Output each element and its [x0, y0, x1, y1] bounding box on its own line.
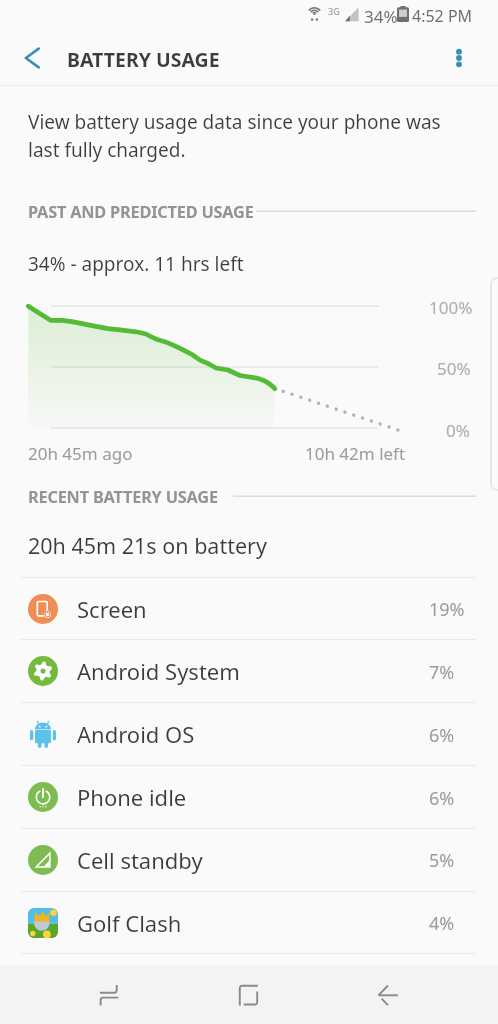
staticText: Phone idle [77, 782, 187, 812]
staticText: 4:52 PM [412, 5, 473, 27]
staticText: Golf Clash [77, 908, 182, 938]
staticText: 4% [429, 911, 455, 936]
staticText: 20h 45m 21s on battery [28, 531, 267, 560]
staticText: RECENT BATTERY USAGE [28, 486, 218, 508]
button[interactable]: Navigate up [6, 32, 58, 84]
staticText: 100% [429, 296, 473, 319]
staticText: Android OS [77, 719, 195, 749]
staticText: 3G [328, 5, 340, 17]
staticText: 5% [429, 848, 455, 873]
staticText: 0% [446, 419, 470, 442]
staticText: PAST AND PREDICTED USAGE [28, 201, 254, 223]
button[interactable]: Cell standby [0, 829, 498, 891]
button[interactable]: Phone idle [0, 766, 498, 828]
button[interactable]: Home [216, 963, 281, 1024]
staticText: 34% - approx. 11 hrs left [28, 251, 244, 277]
staticText: 6% [429, 723, 455, 748]
button[interactable]: Android System [0, 640, 498, 702]
staticText: 34% [364, 5, 398, 28]
staticText: 7% [429, 660, 455, 685]
staticText: 10h 42m left [305, 442, 406, 465]
button[interactable]: Golf Clash [0, 892, 498, 954]
staticText: 6% [429, 786, 455, 811]
staticText: 20h 45m ago [28, 442, 133, 465]
button[interactable]: Back [356, 963, 421, 1024]
staticText: Android System [77, 656, 240, 686]
staticText: last fully charged. [28, 137, 186, 163]
staticText: 19% [429, 597, 465, 622]
button[interactable]: More options [433, 32, 485, 84]
button[interactable]: Recent apps [76, 963, 141, 1024]
staticText: Screen [77, 594, 147, 624]
staticText: View battery usage data since your phone… [28, 109, 441, 135]
staticText: Cell standby [77, 845, 203, 875]
button[interactable]: Screen [0, 578, 498, 640]
staticText: BATTERY USAGE [67, 46, 220, 73]
button[interactable]: Android OS [0, 703, 498, 765]
staticText: 50% [437, 357, 471, 380]
